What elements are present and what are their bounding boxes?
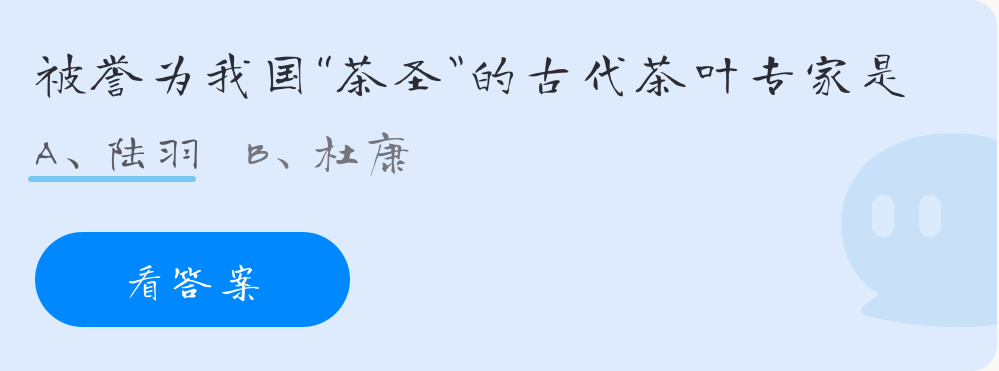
staticText: A、: [33, 127, 109, 174]
button[interactable]: B、: [0, 0, 412, 174]
button[interactable]: A、: [0, 0, 196, 182]
staticText: 陆羽: [103, 127, 202, 174]
button[interactable]: 看答案: [0, 0, 350, 327]
staticText: B、: [245, 127, 319, 174]
staticText: 杜康: [313, 127, 412, 174]
staticText: 看答案: [124, 259, 261, 300]
staticText: 被誉为我国“茶圣”的古代茶叶专家是: [36, 47, 909, 96]
